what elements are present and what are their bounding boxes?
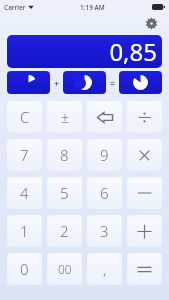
staticText: C — [20, 107, 30, 127]
button[interactable]: 4 — [7, 177, 42, 209]
button[interactable]: 6 — [87, 177, 122, 209]
button[interactable]: 3 — [87, 215, 122, 247]
button[interactable]: 5 — [47, 177, 82, 209]
button[interactable]: 0 — [7, 253, 42, 285]
staticText: 4 — [20, 183, 29, 203]
button[interactable]: ± — [47, 101, 82, 133]
staticText: 8 — [60, 145, 69, 165]
staticText: 3 — [100, 221, 109, 241]
staticText: Carrier — [4, 3, 26, 12]
button[interactable]: Fraction 85 percent — [119, 71, 162, 94]
button[interactable]: Minus — [127, 177, 162, 209]
staticText: + — [54, 77, 60, 89]
button[interactable]: Backspace — [87, 101, 122, 133]
button[interactable]: , — [87, 253, 122, 285]
button[interactable]: Plus — [127, 215, 162, 247]
staticText: 6 — [100, 183, 109, 203]
button[interactable]: Divide — [127, 101, 162, 133]
button[interactable]: Settings — [143, 15, 159, 31]
button[interactable]: C — [7, 101, 42, 133]
staticText: , — [103, 259, 107, 279]
staticText: 1 — [20, 221, 29, 241]
staticText: 0,85 — [109, 35, 157, 68]
button[interactable]: 0,85 — [7, 35, 162, 68]
staticText: 7 — [20, 145, 29, 165]
button[interactable]: Multiply — [127, 139, 162, 171]
staticText: 5 — [60, 183, 69, 203]
staticText: 2 — [60, 221, 69, 241]
staticText: = — [110, 77, 116, 89]
button[interactable]: 9 — [87, 139, 122, 171]
button[interactable]: 2 — [47, 215, 82, 247]
button[interactable]: Equals — [127, 253, 162, 285]
button[interactable]: Fraction 67 percent — [63, 71, 106, 94]
staticText: 00 — [58, 261, 72, 277]
staticText: ± — [61, 108, 69, 127]
button[interactable]: 00 — [47, 253, 82, 285]
staticText: 9 — [100, 145, 109, 165]
staticText: 0 — [20, 259, 29, 279]
button[interactable]: 1 — [7, 215, 42, 247]
button[interactable]: Fraction 18 percent — [7, 71, 50, 94]
button[interactable]: 8 — [47, 139, 82, 171]
staticText: 1:19 AM — [80, 3, 105, 12]
button[interactable]: 7 — [7, 139, 42, 171]
